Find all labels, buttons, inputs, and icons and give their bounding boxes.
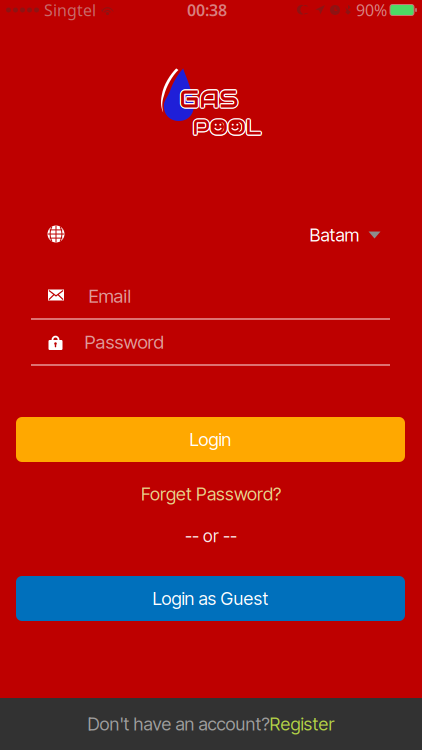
staticText: GAS xyxy=(180,83,239,113)
staticText: 90% xyxy=(356,0,387,21)
staticText: Email xyxy=(88,285,131,307)
staticText: Forget Password? xyxy=(141,483,281,505)
button[interactable]: Don't have an account? xyxy=(0,698,422,750)
staticText: POOL xyxy=(193,114,262,141)
staticText: POOL xyxy=(192,112,261,140)
button[interactable]: Login as Guest xyxy=(16,576,405,621)
button[interactable]: Change language xyxy=(40,218,71,249)
staticText: Batam xyxy=(309,224,359,246)
staticText: Register xyxy=(269,713,334,735)
staticText: -- or -- xyxy=(185,525,237,546)
staticText: Singtel xyxy=(44,0,96,21)
button[interactable]: Batam xyxy=(303,218,386,252)
staticText: POOL xyxy=(191,113,260,141)
staticText: POOL xyxy=(193,112,262,140)
staticText: GAS xyxy=(179,84,238,114)
staticText: POOL xyxy=(192,112,261,139)
staticText: POOL xyxy=(192,113,261,141)
staticText: Password xyxy=(84,331,163,353)
button[interactable]: Login xyxy=(16,417,405,462)
staticText: GAS xyxy=(178,84,237,114)
staticText: GAS xyxy=(179,85,238,115)
staticText: GAS xyxy=(179,82,238,113)
staticText: POOL xyxy=(194,113,263,141)
staticText: GAS xyxy=(179,83,238,113)
staticText: POOL xyxy=(192,114,261,141)
button[interactable]: Forget Password? xyxy=(136,478,286,510)
staticText: Login xyxy=(189,429,231,450)
staticText: 00:38 xyxy=(187,0,227,21)
staticText: POOL xyxy=(192,115,261,142)
staticText: GAS xyxy=(179,85,238,115)
staticText: GAS xyxy=(180,85,239,115)
staticText: GAS xyxy=(181,84,240,114)
staticText: Don't have an account? xyxy=(87,713,269,735)
staticText: Login as Guest xyxy=(152,588,268,609)
